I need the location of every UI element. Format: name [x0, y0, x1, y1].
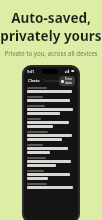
- staticText: Chats: [28, 78, 40, 84]
- staticText: Transcript: [43, 78, 59, 83]
- staticText: 9:41: [27, 69, 35, 74]
- staticText: Translate: [65, 77, 73, 85]
- button[interactable]: Chats: [27, 77, 41, 85]
- staticText: Auto-saved,: [11, 9, 91, 27]
- staticText: Private to you, across all devices: [4, 49, 98, 57]
- staticText: privately yours: [0, 27, 102, 45]
- button[interactable]: Translate: [59, 76, 75, 86]
